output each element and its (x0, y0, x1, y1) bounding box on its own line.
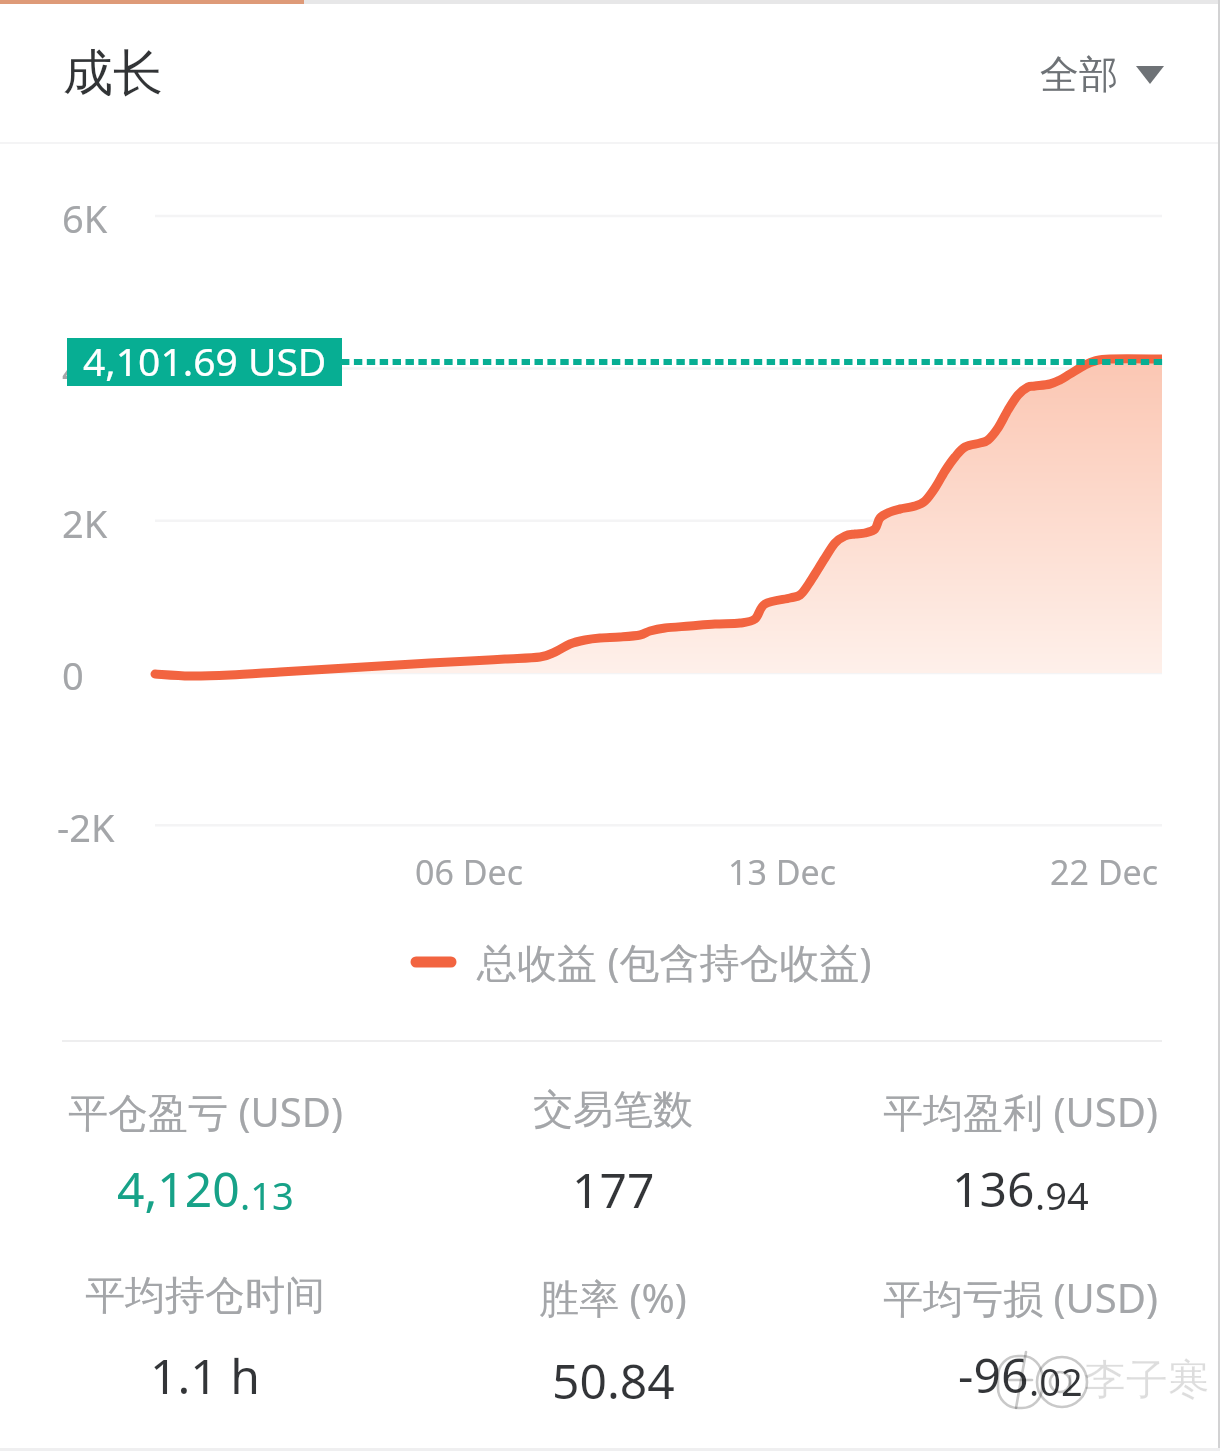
staticText: 平均亏损 (USD) (883, 1270, 1158, 1325)
staticText: 136 (952, 1156, 1035, 1221)
button[interactable]: 平均持仓时间 (5, 1270, 405, 1408)
button[interactable]: 胜率 (%) (413, 1270, 813, 1413)
button[interactable]: 平均亏损 (USD) (820, 1270, 1220, 1407)
staticText: 平仓盈亏 (USD) (68, 1084, 343, 1139)
button[interactable]: 全部 (1018, 26, 1201, 123)
staticText: 1.1 h (150, 1343, 260, 1408)
staticText: .94 (1035, 1169, 1089, 1221)
staticText: -96 (958, 1342, 1029, 1407)
staticText: 4K (62, 344, 108, 396)
staticText: 总收益 (包含持仓收益) (477, 934, 872, 989)
staticText: 李子寒 (1084, 1354, 1210, 1407)
staticText: 06 Dec (415, 849, 524, 895)
staticText: 177 (572, 1157, 655, 1222)
button[interactable]: 平均盈利 (USD) (820, 1084, 1220, 1221)
staticText: 6K (62, 192, 108, 244)
staticText: 0 (62, 649, 84, 701)
staticText: 22 Dec (1050, 849, 1159, 895)
button[interactable]: 总收益 (包含持仓收益) (415, 934, 872, 989)
staticText: 交易笔数 (533, 1084, 693, 1134)
staticText: .02 (1029, 1355, 1083, 1407)
staticText: 全部 (1040, 50, 1118, 99)
staticText: 13 Dec (728, 849, 837, 895)
staticText: 4,120 (117, 1156, 240, 1221)
staticText: 胜率 (%) (539, 1270, 687, 1325)
button[interactable]: 4,101.69 USD (67, 338, 342, 386)
staticText: -2K (57, 801, 115, 853)
staticText: 4,101.69 USD (83, 334, 327, 382)
staticText: 2K (62, 497, 108, 549)
button[interactable]: 平仓盈亏 (USD) (5, 1084, 405, 1221)
staticText: .13 (240, 1169, 294, 1221)
button[interactable]: 交易笔数 (413, 1084, 813, 1222)
staticText: 成长 (63, 42, 163, 105)
staticText: 平均持仓时间 (85, 1270, 325, 1320)
staticText: 平均盈利 (USD) (883, 1084, 1158, 1139)
staticText: 50.84 (552, 1348, 675, 1413)
